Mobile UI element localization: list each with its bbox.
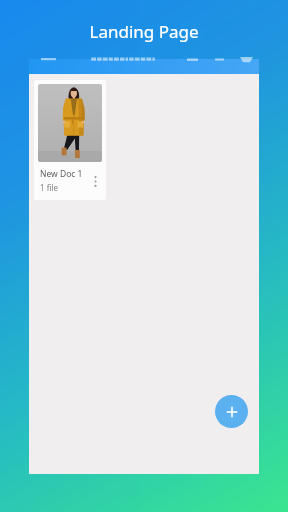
staticText: New Doc 1 bbox=[40, 168, 83, 180]
staticText: 1 file bbox=[40, 182, 59, 193]
button[interactable]: Add document bbox=[215, 395, 248, 428]
button[interactable]: More options bbox=[89, 172, 101, 190]
staticText: Landing Page bbox=[0, 20, 288, 43]
button[interactable]: New Doc 1 bbox=[34, 80, 106, 200]
